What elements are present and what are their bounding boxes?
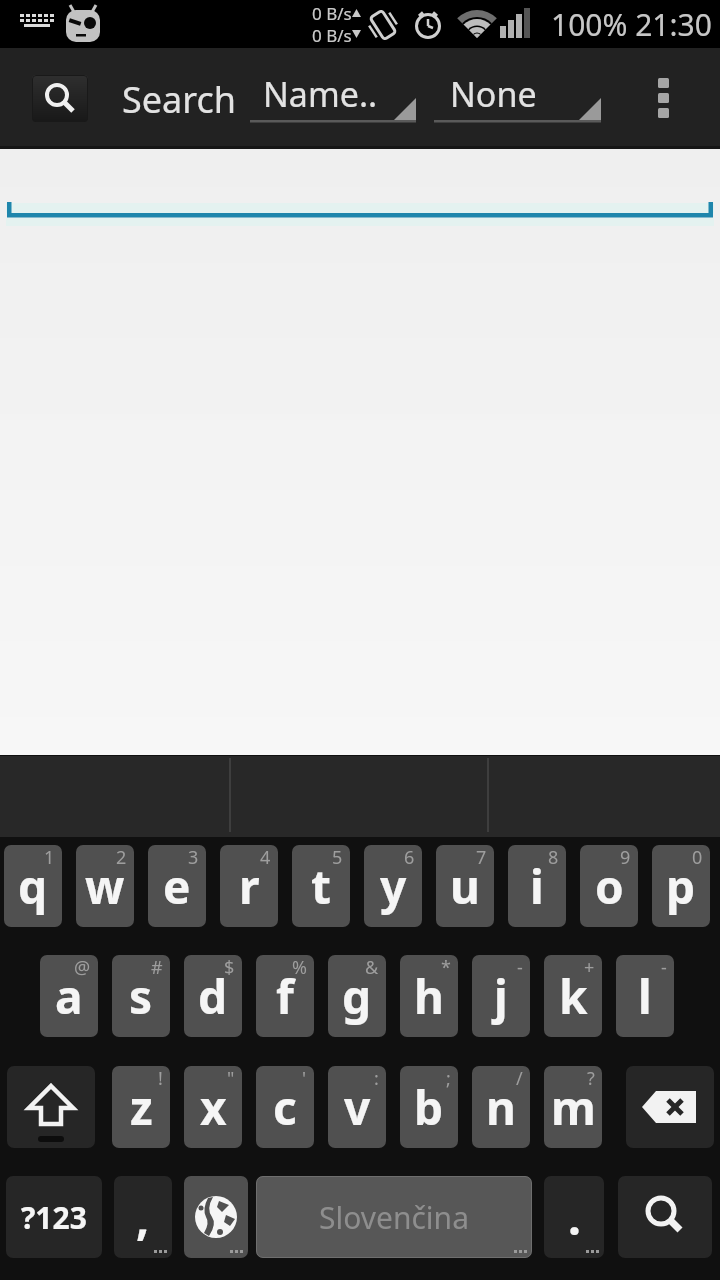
staticText: - <box>661 955 667 980</box>
staticText: & <box>365 955 379 980</box>
staticText: : <box>374 1066 379 1091</box>
staticText: , <box>136 1186 150 1249</box>
button[interactable]: None <box>434 70 601 123</box>
staticText: t <box>311 855 331 918</box>
button[interactable] <box>618 1176 712 1258</box>
staticText: * <box>441 955 451 980</box>
button[interactable] <box>32 75 88 122</box>
staticText: v <box>344 1076 371 1139</box>
staticText: q <box>18 855 48 918</box>
button[interactable]: u <box>436 845 494 927</box>
staticText: x <box>200 1076 227 1139</box>
button[interactable]: m <box>544 1066 602 1148</box>
button[interactable] <box>626 1066 714 1148</box>
staticText: 3 <box>188 845 199 870</box>
staticText: u <box>450 855 480 918</box>
staticText: e <box>163 855 191 918</box>
button[interactable]: l <box>616 955 674 1037</box>
button[interactable]: s <box>112 955 170 1037</box>
button[interactable]: p <box>652 845 710 927</box>
staticText: y <box>380 855 407 918</box>
staticText: @ <box>74 955 91 980</box>
button[interactable]: o <box>580 845 638 927</box>
staticText: 4 <box>260 845 271 870</box>
button[interactable] <box>184 1176 248 1258</box>
button[interactable]: , <box>114 1176 172 1258</box>
staticText: 6 <box>404 845 415 870</box>
button[interactable] <box>7 1066 95 1148</box>
staticText: s <box>129 965 153 1028</box>
button[interactable]: k <box>544 955 602 1037</box>
staticText: ?123 <box>21 1197 87 1238</box>
button[interactable]: t <box>292 845 350 927</box>
staticText: 7 <box>476 845 487 870</box>
staticText: b <box>414 1076 444 1139</box>
button[interactable]: . <box>544 1176 604 1258</box>
staticText: ; <box>446 1066 451 1091</box>
staticText: n <box>486 1076 516 1139</box>
button[interactable]: v <box>328 1066 386 1148</box>
button[interactable]: w <box>76 845 134 927</box>
staticText: 0 B/s <box>312 2 352 24</box>
button[interactable]: g <box>328 955 386 1037</box>
staticText: f <box>276 965 294 1028</box>
staticText: r <box>239 855 260 918</box>
staticText: + <box>584 955 595 980</box>
staticText: " <box>227 1066 235 1091</box>
button[interactable]: y <box>364 845 422 927</box>
staticText: m <box>551 1076 596 1139</box>
button[interactable]: i <box>508 845 566 927</box>
staticText: p <box>666 855 696 918</box>
button[interactable]: ?123 <box>6 1176 102 1258</box>
button[interactable]: e <box>148 845 206 927</box>
staticText: 0 <box>692 845 703 870</box>
staticText: d <box>198 965 228 1028</box>
staticText: a <box>55 965 83 1028</box>
staticText: 0 B/s <box>312 24 352 46</box>
staticText: l <box>638 965 652 1028</box>
button[interactable]: x <box>184 1066 242 1148</box>
staticText: % <box>292 955 307 980</box>
button[interactable]: Slovenčina <box>256 1176 532 1258</box>
staticText: Search <box>122 75 236 122</box>
staticText: # <box>151 955 163 980</box>
button[interactable] <box>0 189 720 239</box>
staticText: 2 <box>116 845 127 870</box>
staticText: . <box>568 1186 581 1249</box>
staticText: None <box>450 71 537 117</box>
button[interactable]: z <box>112 1066 170 1148</box>
staticText: ! <box>158 1066 163 1091</box>
staticText: g <box>342 965 372 1028</box>
button[interactable]: Name.. <box>250 70 416 123</box>
button[interactable]: n <box>472 1066 530 1148</box>
staticText: ? <box>587 1066 595 1091</box>
staticText: 9 <box>620 845 631 870</box>
button[interactable]: j <box>472 955 530 1037</box>
button[interactable]: c <box>256 1066 314 1148</box>
button[interactable]: f <box>256 955 314 1037</box>
staticText: k <box>559 965 588 1028</box>
staticText: Slovenčina <box>319 1197 469 1238</box>
staticText: w <box>85 855 125 918</box>
staticText: - <box>517 955 523 980</box>
button[interactable]: b <box>400 1066 458 1148</box>
staticText: ' <box>302 1066 307 1091</box>
button[interactable]: a <box>40 955 98 1037</box>
staticText: c <box>273 1076 297 1139</box>
staticText: Name.. <box>263 71 378 117</box>
button[interactable] <box>634 60 694 138</box>
button[interactable]: d <box>184 955 242 1037</box>
staticText: h <box>414 965 444 1028</box>
staticText: 5 <box>332 845 343 870</box>
staticText: $ <box>224 955 235 980</box>
button[interactable]: r <box>220 845 278 927</box>
staticText: 100% 21:30 <box>551 4 712 45</box>
staticText: i <box>530 855 544 918</box>
button[interactable]: q <box>4 845 62 927</box>
staticText: z <box>130 1076 153 1139</box>
staticText: 8 <box>548 845 559 870</box>
staticText: j <box>494 965 508 1028</box>
staticText: o <box>595 855 624 918</box>
button[interactable]: h <box>400 955 458 1037</box>
staticText: / <box>516 1066 523 1091</box>
